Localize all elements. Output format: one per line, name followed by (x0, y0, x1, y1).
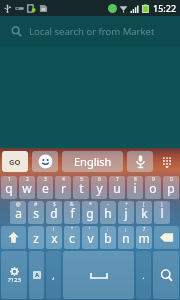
button[interactable]: k (136, 201, 152, 224)
staticText: Local search or from Market (29, 25, 155, 38)
staticText: @ (16, 201, 21, 208)
staticText: s (33, 205, 39, 221)
button[interactable]: t (73, 176, 89, 199)
staticText: 9 (152, 176, 155, 183)
staticText: $ (53, 201, 56, 208)
staticText: u (113, 180, 121, 196)
staticText: 5 (80, 176, 83, 183)
staticText: h (104, 205, 112, 221)
button[interactable]: n (118, 226, 134, 249)
button[interactable]: s (28, 201, 44, 224)
staticText: ?123 (8, 276, 21, 284)
button[interactable]: . (136, 251, 151, 299)
staticText: m (138, 230, 150, 246)
staticText: q (5, 180, 13, 196)
button[interactable]: a (10, 201, 26, 224)
staticText: w (22, 180, 32, 196)
staticText: 7 (116, 176, 119, 183)
staticText: 1 (8, 176, 11, 183)
staticText: i (133, 180, 137, 196)
button[interactable]: Emoji (32, 151, 58, 172)
button[interactable]: i (127, 176, 143, 199)
staticText: " (71, 226, 74, 233)
button[interactable]: Space (63, 251, 134, 299)
staticText: # (34, 201, 38, 208)
button[interactable]: f (64, 201, 80, 224)
button[interactable]: j (118, 201, 134, 224)
staticText: n (122, 230, 130, 246)
staticText: ' (89, 226, 91, 233)
staticText: r (61, 180, 66, 196)
staticText: 4 (62, 176, 65, 183)
staticText: v (87, 230, 94, 246)
button[interactable]: y (91, 176, 107, 199)
staticText: 6 (98, 176, 101, 183)
staticText: 8 (134, 176, 137, 183)
staticText: ) (161, 201, 163, 208)
staticText: GO (9, 157, 21, 167)
staticText: a (15, 205, 22, 221)
button[interactable]: Search (0, 16, 180, 46)
staticText: f (70, 205, 75, 221)
staticText: + (125, 201, 128, 208)
button[interactable]: x (46, 226, 62, 249)
staticText: : (107, 226, 109, 233)
button[interactable]: o (145, 176, 161, 199)
button[interactable]: d (46, 201, 62, 224)
staticText: ? (143, 226, 146, 233)
button[interactable]: Settings and symbols (1, 251, 27, 299)
staticText: k (141, 205, 148, 221)
staticText: * (89, 201, 92, 208)
staticText: English (74, 154, 112, 169)
staticText: d (50, 205, 58, 221)
staticText: & (70, 201, 74, 208)
staticText: l (160, 205, 164, 221)
staticText: z (33, 230, 39, 246)
staticText: 3 (44, 176, 47, 183)
button[interactable]: q (1, 176, 17, 199)
staticText: . (142, 269, 145, 281)
button[interactable]: u (109, 176, 125, 199)
staticText: p (167, 180, 175, 196)
button[interactable]: p (163, 176, 179, 199)
staticText: ! (53, 226, 55, 233)
button[interactable]: w (19, 176, 35, 199)
staticText: y (96, 180, 103, 196)
staticText: 15:22 (153, 2, 177, 14)
button[interactable]: c (64, 226, 80, 249)
button[interactable]: Backspace (154, 226, 179, 249)
button[interactable]: g (82, 201, 98, 224)
button[interactable]: l (154, 201, 170, 224)
staticText: - (107, 201, 109, 208)
staticText: t (79, 180, 84, 196)
staticText: e (42, 180, 49, 196)
button[interactable]: r (55, 176, 71, 199)
button[interactable]: v (82, 226, 98, 249)
staticText: 0 (170, 176, 173, 183)
staticText: g (86, 205, 94, 221)
staticText: A (35, 271, 40, 279)
button[interactable]: Voice input (127, 151, 153, 172)
button[interactable]: Shift (1, 226, 26, 249)
button[interactable]: m (136, 226, 152, 249)
button[interactable]: Search (153, 251, 179, 299)
button[interactable]: Keyboard menu (156, 151, 178, 172)
staticText: ; (125, 226, 127, 233)
button[interactable]: GO (2, 151, 28, 172)
button[interactable]: English (62, 151, 123, 172)
staticText: ( (143, 201, 145, 208)
staticText: c (69, 230, 75, 246)
button[interactable]: b (100, 226, 116, 249)
other: Search (11, 26, 22, 37)
staticText: o (149, 180, 157, 196)
staticText: b (104, 230, 112, 246)
staticText: , (52, 269, 55, 281)
button[interactable]: Change language (29, 251, 44, 299)
button[interactable]: z (28, 226, 44, 249)
staticText: x (51, 230, 58, 246)
staticText: 2 (26, 176, 29, 183)
button[interactable]: e (37, 176, 53, 199)
button[interactable]: , (46, 251, 61, 299)
staticText: j (124, 205, 128, 221)
button[interactable]: h (100, 201, 116, 224)
